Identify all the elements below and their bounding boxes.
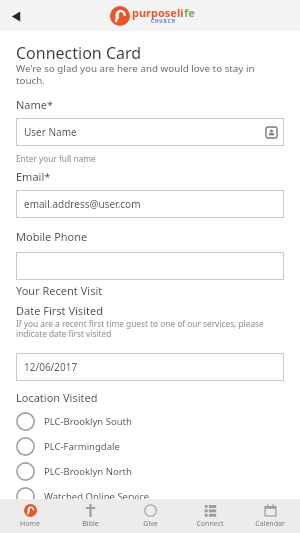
staticText: email.address@user.com [24, 197, 141, 211]
staticText: PLC-Brooklyn North [44, 465, 132, 478]
staticText: Your Recent Visit [16, 283, 103, 298]
button[interactable]: Connect [180, 499, 240, 533]
staticText: User Name [24, 125, 77, 139]
button[interactable]: Give [120, 499, 180, 533]
staticText: PLC-Brooklyn South [44, 415, 132, 428]
staticText: Calendar [255, 519, 285, 529]
staticText: Give [143, 519, 158, 529]
staticText: PLC-Farmingdale [44, 440, 120, 453]
staticText: fe [184, 5, 195, 20]
staticText: Watched Online Service [44, 490, 150, 503]
button[interactable]: PLC-Farmingdale [16, 434, 284, 459]
button[interactable] [16, 252, 284, 280]
staticText: purpose [132, 5, 177, 20]
staticText: CHURCH [151, 18, 177, 24]
button[interactable]: email.address@user.com [16, 190, 284, 218]
button[interactable]: Calendar [240, 499, 300, 533]
staticText: Connect [196, 519, 224, 529]
button[interactable]: 12/06/2017 [16, 353, 284, 381]
staticText: If you are a recent first time guest to … [16, 318, 284, 340]
staticText: Email* [16, 169, 51, 184]
staticText: 12/06/2017 [24, 360, 78, 374]
staticText: Name* [16, 97, 54, 112]
button[interactable]: PLC-Brooklyn South [16, 409, 284, 434]
button[interactable]: Bible [60, 499, 120, 533]
button[interactable]: Home [0, 499, 60, 533]
staticText: Connection Card [16, 42, 142, 64]
button[interactable]: Watched Online Service [16, 484, 284, 509]
button[interactable]: Back [7, 7, 25, 25]
staticText: Bible [82, 519, 99, 529]
staticText: Location Visited [16, 390, 98, 405]
staticText: Mobile Phone [16, 229, 88, 244]
staticText: Enter your full name [16, 153, 96, 164]
button[interactable]: PLC-Brooklyn North [16, 459, 284, 484]
staticText: Home [20, 519, 40, 529]
staticText: We're so glad you are here and would lov… [16, 62, 284, 87]
button[interactable]: User Name [16, 118, 284, 146]
staticText: Date First Visited [16, 303, 103, 318]
staticText: li [177, 5, 184, 20]
